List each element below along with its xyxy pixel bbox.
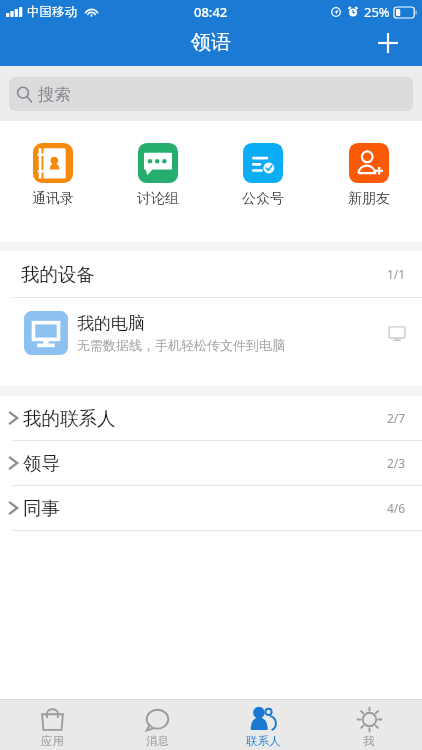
staticText: 无需数据线，手机轻松传文件到电脑 — [77, 337, 285, 353]
button[interactable]: 通讯录 — [0, 121, 105, 208]
staticText: 08:42 — [194, 3, 228, 21]
button[interactable]: 讨论组 — [105, 121, 210, 208]
button[interactable]: Add — [366, 22, 410, 64]
button[interactable]: 我 — [316, 700, 422, 750]
staticText: 领导 — [23, 452, 60, 475]
button[interactable]: 新朋友 — [316, 121, 422, 208]
staticText: 1/1 — [387, 266, 406, 282]
button[interactable]: 我的联系人 — [0, 396, 422, 440]
button[interactable]: 我的电脑 — [0, 298, 422, 367]
staticText: 通讯录 — [32, 190, 74, 208]
button[interactable]: 应用 — [0, 700, 105, 750]
staticText: 领语 — [191, 30, 231, 55]
button[interactable]: 公众号 — [210, 121, 316, 208]
staticText: 我的设备 — [21, 263, 95, 286]
staticText: 我 — [363, 734, 375, 748]
button[interactable]: 同事 — [0, 486, 422, 530]
staticText: 同事 — [23, 497, 60, 520]
button[interactable]: 我的设备 — [0, 251, 422, 297]
staticText: 搜索 — [38, 84, 71, 105]
button[interactable]: 领导 — [0, 441, 422, 485]
staticText: 应用 — [41, 734, 64, 748]
staticText: 4/6 — [387, 500, 406, 516]
button[interactable]: 消息 — [105, 700, 210, 750]
staticText: 我的联系人 — [23, 407, 116, 430]
staticText: 新朋友 — [348, 190, 390, 208]
staticText: 联系人 — [246, 734, 281, 748]
staticText: 我的电脑 — [77, 313, 145, 334]
staticText: 25% — [364, 3, 390, 21]
staticText: 2/3 — [387, 455, 406, 471]
staticText: 2/7 — [387, 410, 406, 426]
button[interactable]: 联系人 — [210, 700, 316, 750]
staticText: 消息 — [146, 734, 169, 748]
other: Computer — [388, 324, 406, 342]
button[interactable]: 搜索 — [9, 77, 413, 111]
staticText: 讨论组 — [137, 190, 179, 208]
staticText: 中国移动 — [27, 4, 77, 20]
staticText: 公众号 — [242, 190, 284, 208]
